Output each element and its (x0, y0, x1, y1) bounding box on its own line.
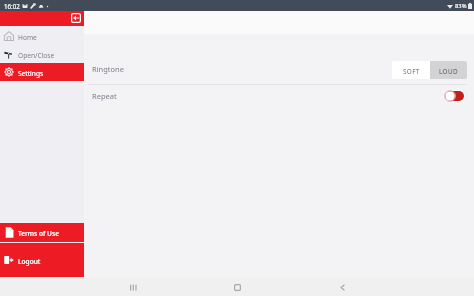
staticText: 16:02 (4, 2, 20, 10)
button[interactable]: Back (324, 278, 360, 296)
button[interactable]: Home (0, 27, 84, 45)
staticText: Ringtone (92, 64, 124, 74)
button[interactable]: Home (219, 278, 255, 296)
staticText: LOUD (439, 67, 458, 76)
staticText: 83% (455, 2, 467, 10)
button[interactable]: Terms of Use (0, 223, 84, 242)
button[interactable]: LOUD (430, 61, 467, 79)
button[interactable]: SOFT (392, 61, 430, 79)
button[interactable]: Repeat (88, 85, 467, 111)
staticText: Terms of Use (18, 229, 59, 238)
button[interactable]: Repeat switch (444, 90, 465, 102)
button[interactable]: Close navigation drawer (68, 10, 83, 25)
button[interactable]: Logout (0, 243, 84, 277)
staticText: Open/Close (18, 51, 55, 60)
button[interactable]: Open/Close (0, 45, 84, 63)
staticText: Settings (18, 69, 44, 78)
button[interactable]: Settings (0, 63, 84, 81)
button[interactable]: Recent apps (115, 278, 151, 296)
button[interactable]: Ringtone (88, 58, 467, 84)
staticText: Repeat (92, 91, 117, 101)
staticText: SOFT (403, 67, 420, 76)
staticText: Home (18, 33, 37, 42)
staticText: Logout (18, 257, 41, 266)
